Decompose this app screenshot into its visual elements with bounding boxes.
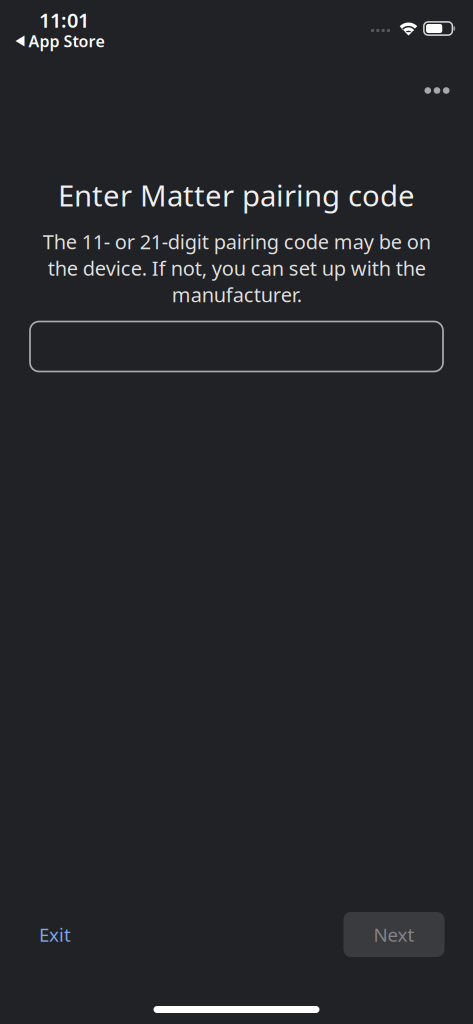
button[interactable]: Next (343, 912, 444, 957)
staticText: 11:01 (39, 7, 89, 33)
staticText: Enter Matter pairing code (58, 175, 415, 214)
staticText: Next (373, 922, 414, 947)
staticText: Exit (39, 922, 71, 947)
button[interactable]: Exit (39, 912, 101, 957)
staticText: App Store (28, 30, 104, 52)
button[interactable]: App Store (0, 26, 114, 56)
button[interactable]: Pairing code (30, 321, 443, 371)
staticText: The 11- or 21-digit pairing code may be … (42, 228, 430, 308)
button[interactable]: More options (408, 68, 466, 112)
